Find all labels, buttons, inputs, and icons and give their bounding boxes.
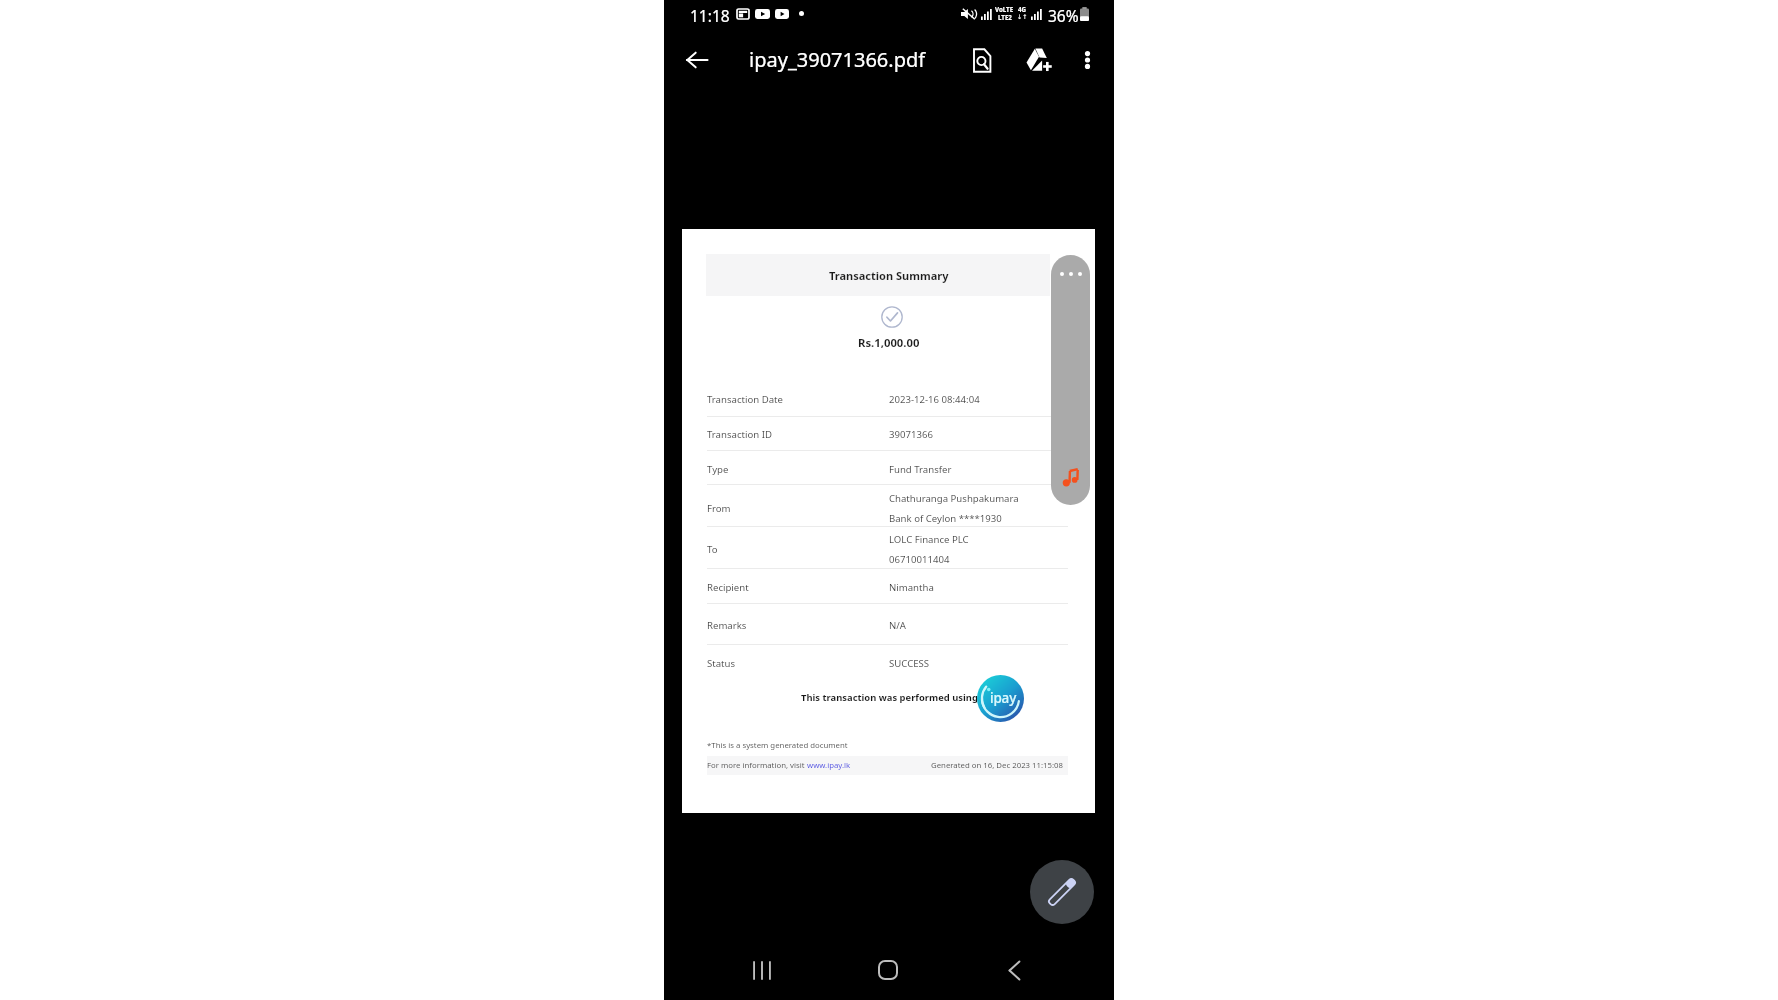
staticText: 39071366	[889, 428, 933, 441]
staticText: To	[707, 543, 718, 556]
staticText: Transaction Summary	[829, 268, 949, 283]
staticText: VoLTE	[995, 5, 1014, 13]
button[interactable]: Scroll	[1051, 255, 1090, 505]
staticText: Type	[707, 463, 729, 476]
staticText: LOLC Finance PLC	[889, 533, 969, 546]
staticText: www.ipay.lk	[807, 760, 851, 771]
staticText: N/A	[889, 619, 906, 632]
staticText: *This is a system generated document	[707, 740, 848, 751]
staticText: Bank of Ceylon ****1930	[889, 512, 1002, 525]
staticText: ipay_39071366.pdf	[749, 46, 926, 73]
staticText: 11:18	[690, 5, 730, 23]
staticText: Rs.1,000.00	[858, 335, 920, 350]
staticText: Transaction Date	[707, 393, 783, 406]
staticText: This transaction was performed using	[801, 691, 978, 704]
staticText: LTE2	[998, 13, 1012, 21]
staticText: 06710011404	[889, 553, 950, 566]
staticText: 2023-12-16 08:44:04	[889, 393, 980, 406]
staticText: Nimantha	[889, 581, 934, 594]
button[interactable]: Edit	[1030, 860, 1094, 924]
staticText: 36%	[1048, 5, 1079, 23]
staticText: Recipient	[707, 581, 749, 594]
staticText: SUCCESS	[889, 657, 930, 670]
button[interactable]: PDF page 1	[682, 229, 1095, 813]
staticText: Generated on 16, Dec 2023 11:15:08	[931, 760, 1064, 771]
staticText: From	[707, 502, 731, 515]
staticText: ipay	[990, 689, 1017, 707]
staticText: Fund Transfer	[889, 463, 952, 476]
staticText: Status	[707, 657, 736, 670]
button[interactable]: Home	[862, 944, 914, 996]
button[interactable]: Back	[674, 37, 720, 83]
button[interactable]: Find in document	[960, 38, 1004, 82]
staticText: Chathuranga Pushpakumara	[889, 492, 1019, 505]
button[interactable]: Recents	[736, 944, 788, 996]
staticText: 4G	[1018, 5, 1027, 13]
button[interactable]: Save to Drive	[1017, 38, 1061, 82]
button[interactable]: More options	[1067, 40, 1107, 80]
staticText: For more information, visit	[707, 760, 807, 771]
button[interactable]: Back	[988, 944, 1040, 996]
staticText: Transaction ID	[707, 428, 772, 441]
staticText: ↓↑	[1017, 13, 1028, 20]
staticText: Remarks	[707, 619, 747, 632]
